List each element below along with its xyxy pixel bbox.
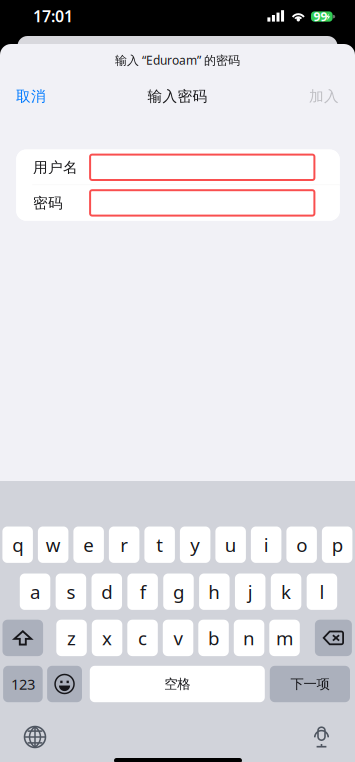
- staticText: a: [30, 579, 40, 604]
- staticText: b: [208, 625, 219, 650]
- button[interactable]: g: [163, 573, 194, 610]
- button[interactable]: s: [56, 573, 86, 610]
- button[interactable]: e: [73, 526, 104, 563]
- button[interactable]: Emoji: [47, 666, 82, 702]
- staticText: d: [101, 579, 112, 604]
- button[interactable]: Dictation: [305, 721, 337, 753]
- staticText: n: [243, 625, 255, 650]
- staticText: 加入: [309, 87, 339, 105]
- staticText: f: [140, 579, 146, 604]
- staticText: y: [190, 532, 200, 557]
- staticText: 123: [11, 674, 35, 694]
- button[interactable]: u: [215, 526, 246, 563]
- staticText: w: [46, 532, 61, 557]
- staticText: t: [156, 532, 163, 557]
- staticText: 下一项: [290, 676, 329, 692]
- staticText: 空格: [164, 676, 190, 692]
- staticText: 输入密码: [147, 87, 207, 105]
- staticText: m: [276, 625, 293, 650]
- button[interactable]: n: [234, 620, 264, 656]
- button[interactable]: 123: [3, 666, 43, 702]
- staticText: q: [12, 532, 23, 557]
- button[interactable]: 空格: [90, 666, 265, 702]
- staticText: h: [208, 579, 220, 604]
- button[interactable]: 加入: [279, 79, 339, 113]
- staticText: v: [174, 625, 183, 650]
- button[interactable]: Next keyboard: [19, 721, 51, 753]
- staticText: o: [296, 532, 307, 557]
- button[interactable]: 取消: [16, 79, 76, 113]
- button[interactable]: v: [163, 620, 193, 656]
- button[interactable]: w: [38, 526, 68, 563]
- button[interactable]: Shift: [2, 620, 43, 656]
- staticText: 输入 “Eduroam” 的密码: [115, 52, 240, 68]
- button[interactable]: l: [307, 573, 337, 610]
- staticText: s: [66, 579, 75, 604]
- staticText: g: [173, 579, 184, 604]
- button[interactable]: c: [127, 620, 158, 656]
- staticText: e: [83, 532, 94, 557]
- button[interactable]: d: [91, 573, 122, 610]
- staticText: k: [281, 579, 291, 604]
- staticText: p: [332, 532, 343, 557]
- staticText: 用户名: [33, 158, 78, 176]
- staticText: c: [138, 625, 147, 650]
- button[interactable]: b: [198, 620, 229, 656]
- button[interactable]: o: [286, 526, 317, 563]
- button[interactable]: k: [271, 573, 301, 610]
- button[interactable]: y: [180, 526, 210, 563]
- button[interactable]: j: [235, 573, 265, 610]
- staticText: i: [264, 532, 269, 557]
- button[interactable]: z: [56, 620, 87, 656]
- button[interactable]: p: [322, 526, 352, 563]
- staticText: x: [102, 625, 112, 650]
- staticText: j: [248, 579, 253, 604]
- button[interactable]: i: [251, 526, 281, 563]
- staticText: 17:01: [33, 5, 73, 27]
- staticText: z: [67, 625, 76, 650]
- button[interactable]: f: [127, 573, 158, 610]
- staticText: 99: [313, 9, 327, 24]
- button[interactable]: 下一项: [270, 666, 350, 702]
- button[interactable]: r: [109, 526, 139, 563]
- button[interactable]: h: [199, 573, 230, 610]
- button[interactable]: a: [20, 573, 50, 610]
- button[interactable]: q: [2, 526, 33, 563]
- staticText: u: [225, 532, 237, 557]
- staticText: 取消: [16, 87, 46, 105]
- button[interactable]: Delete: [315, 620, 352, 656]
- staticText: l: [319, 579, 324, 604]
- staticText: 密码: [33, 194, 63, 212]
- button[interactable]: m: [269, 620, 300, 656]
- button[interactable]: x: [92, 620, 122, 656]
- button[interactable]: t: [144, 526, 175, 563]
- staticText: r: [120, 532, 128, 557]
